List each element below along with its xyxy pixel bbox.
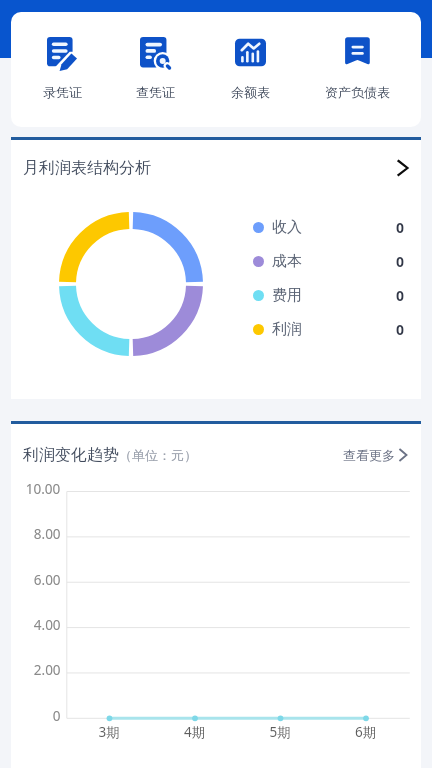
button[interactable]: 费用 — [253, 278, 405, 312]
button[interactable]: 查凭证 — [113, 12, 197, 100]
staticText: 0 — [396, 218, 405, 237]
button[interactable]: 查看更多 — [343, 447, 411, 463]
staticText: 费用 — [272, 286, 302, 305]
staticText: 月利润表结构分析 — [23, 158, 151, 178]
staticText: 录凭证 — [43, 84, 82, 100]
staticText: 收入 — [272, 218, 302, 237]
staticText: （单位：元） — [119, 447, 197, 463]
button[interactable]: 月利润表结构分析 — [11, 140, 421, 195]
button[interactable]: 资产负债表 — [315, 12, 399, 100]
staticText: 成本 — [272, 252, 302, 271]
staticText: 0 — [396, 286, 405, 305]
staticText: 0 — [396, 252, 405, 271]
staticText: 0 — [396, 320, 405, 339]
button[interactable]: 录凭证 — [20, 12, 104, 100]
button[interactable]: 成本 — [253, 244, 405, 278]
staticText: 查凭证 — [136, 84, 175, 100]
staticText: 查看更多 — [343, 447, 395, 463]
staticText: 资产负债表 — [325, 84, 390, 100]
staticText: 利润变化趋势 — [23, 445, 119, 465]
button[interactable]: 收入 — [253, 210, 405, 244]
staticText: 余额表 — [231, 84, 270, 100]
button[interactable]: 余额表 — [208, 12, 292, 100]
staticText: 利润 — [272, 320, 302, 339]
button[interactable]: 利润 — [253, 312, 405, 346]
